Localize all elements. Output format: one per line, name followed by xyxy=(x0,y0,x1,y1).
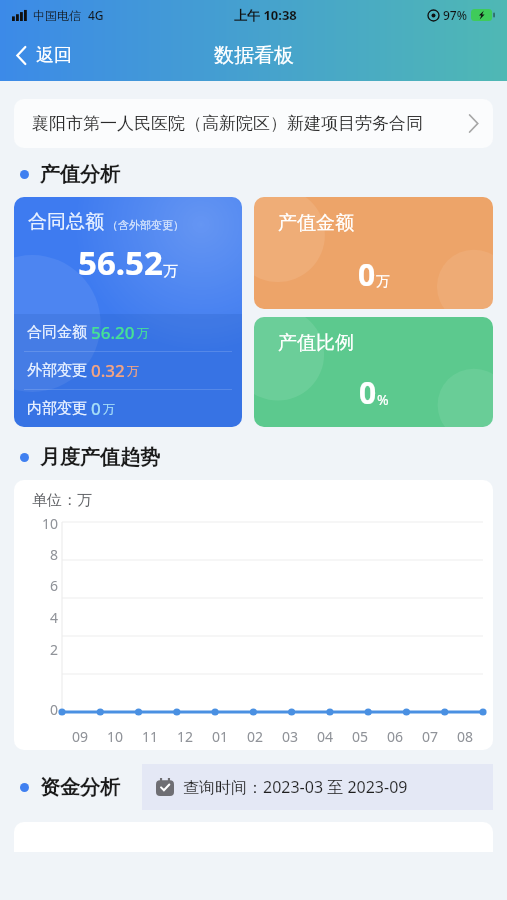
staticText: 万 xyxy=(137,325,149,340)
staticText: 返回 xyxy=(36,44,72,67)
staticText: 合同金额 xyxy=(27,323,87,342)
staticText: 万 xyxy=(163,262,178,281)
button[interactable]: 襄阳市第一人民医院（高新院区）新建项目劳务合同 xyxy=(14,99,493,148)
staticText: 合同总额 xyxy=(28,210,104,234)
button[interactable]: 产值比例 xyxy=(254,317,493,427)
staticText: 08 xyxy=(457,727,474,746)
staticText: （含外部变更） xyxy=(107,218,184,232)
staticText: 0 xyxy=(49,700,58,719)
staticText: 查询时间：2023-03 至 2023-09 xyxy=(183,776,408,798)
staticText: 产值分析 xyxy=(40,162,120,187)
staticText: 6 xyxy=(49,576,58,595)
staticText: 襄阳市第一人民医院（高新院区）新建项目劳务合同 xyxy=(32,113,454,134)
button[interactable]: 查询时间：2023-03 至 2023-09 xyxy=(142,764,493,810)
staticText: 0 xyxy=(358,254,376,295)
button[interactable]: 产值金额 xyxy=(254,197,493,309)
staticText: 上午 10:38 xyxy=(234,6,297,24)
staticText: 万 xyxy=(127,363,139,378)
staticText: 万 xyxy=(103,401,115,416)
staticText: 05 xyxy=(352,727,369,746)
staticText: 4G xyxy=(88,7,104,23)
staticText: 产值金额 xyxy=(278,211,354,235)
staticText: 资金分析 xyxy=(40,775,120,800)
staticText: 外部变更 xyxy=(27,361,87,380)
staticText: 97% xyxy=(443,7,467,23)
staticText: 10 xyxy=(107,727,124,746)
staticText: 06 xyxy=(387,727,404,746)
staticText: 月度产值趋势 xyxy=(40,445,160,470)
button[interactable]: 返回 xyxy=(0,36,86,75)
staticText: 0 xyxy=(91,397,101,420)
staticText: 产值比例 xyxy=(278,331,354,355)
button[interactable]: 合同总额 xyxy=(14,197,242,427)
staticText: % xyxy=(377,390,389,409)
staticText: 内部变更 xyxy=(27,399,87,418)
staticText: 09 xyxy=(72,727,89,746)
staticText: 12 xyxy=(177,727,194,746)
staticText: 单位：万 xyxy=(32,491,92,510)
staticText: 01 xyxy=(212,727,229,746)
staticText: 07 xyxy=(422,727,439,746)
staticText: 0 xyxy=(359,372,377,413)
staticText: 中国电信 xyxy=(33,8,81,23)
staticText: 03 xyxy=(282,727,299,746)
staticText: 2 xyxy=(49,640,58,659)
staticText: 10 xyxy=(41,514,58,533)
staticText: 11 xyxy=(142,727,159,746)
staticText: 数据看板 xyxy=(214,43,294,68)
staticText: 56.20 xyxy=(91,321,135,344)
staticText: 8 xyxy=(49,545,58,564)
staticText: 02 xyxy=(247,727,264,746)
other: 查看合同详情 xyxy=(468,114,479,133)
staticText: 万 xyxy=(376,273,390,291)
staticText: 04 xyxy=(317,727,334,746)
staticText: 56.52 xyxy=(78,240,163,285)
staticText: 0.32 xyxy=(91,359,125,382)
staticText: 4 xyxy=(49,608,58,627)
